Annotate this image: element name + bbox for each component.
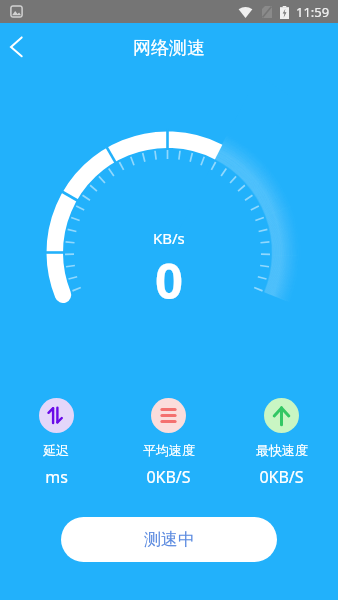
button[interactable]: 测速中 (61, 517, 277, 562)
staticText: 0 (155, 247, 184, 314)
button[interactable]: 最快速度 (225, 398, 338, 488)
staticText: ms (45, 466, 68, 488)
button[interactable]: 平均速度 (112, 398, 225, 488)
staticText: 网络测速 (133, 37, 205, 60)
staticText: KB/s (153, 228, 185, 248)
button[interactable]: Back (0, 23, 40, 71)
staticText: 测速中 (144, 529, 195, 550)
staticText: 平均速度 (143, 442, 195, 458)
button[interactable]: 延迟 (0, 398, 112, 488)
staticText: 延迟 (43, 442, 69, 458)
staticText: 0KB/S (259, 466, 304, 488)
staticText: 11:59 (296, 3, 330, 21)
staticText: 0KB/S (146, 466, 191, 488)
staticText: 最快速度 (256, 442, 308, 458)
